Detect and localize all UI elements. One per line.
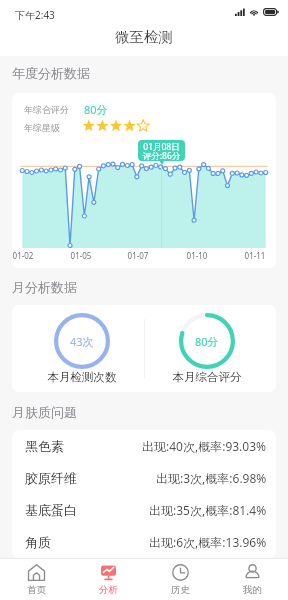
button[interactable]: 80分 (147, 313, 267, 385)
staticText: 评分:86分 (138, 150, 185, 161)
staticText: 80分 (195, 334, 219, 349)
button[interactable]: History (144, 559, 216, 596)
staticText: 01月08日 (138, 141, 185, 153)
staticText: 01-11 (239, 250, 271, 261)
staticText: 43次 (70, 334, 94, 349)
staticText: 本月检测次数 (22, 370, 142, 384)
staticText: 年度分析数据 (12, 65, 90, 81)
staticText: 01-10 (181, 250, 213, 261)
staticText: 首页 (27, 584, 46, 596)
staticText: 出现:3次,概率:6.98% (156, 470, 267, 486)
button[interactable]: 基底蛋白 (12, 494, 276, 526)
staticText: 出现:6次,概率:13.96% (149, 534, 267, 550)
staticText: 出现:35次,概率:81.4% (149, 502, 267, 518)
button[interactable]: Profile (216, 559, 288, 596)
button[interactable]: 角质 (12, 526, 276, 558)
staticText: 出现:40次,概率:93.03% (142, 438, 267, 454)
button[interactable]: 43次 (22, 313, 142, 385)
button[interactable]: 黑色素 (12, 430, 276, 462)
staticText: 01-02 (12, 250, 39, 261)
staticText: 分析 (99, 584, 118, 596)
staticText: 基底蛋白 (25, 502, 77, 518)
staticText: 80分 (84, 102, 108, 117)
staticText: 我的 (243, 584, 262, 596)
staticText: 黑色素 (25, 438, 64, 454)
staticText: 01-07 (122, 250, 154, 261)
staticText: 微至检测 (115, 28, 173, 46)
staticText: 月分析数据 (12, 279, 77, 295)
button[interactable]: 年综合评分 (12, 93, 276, 268)
staticText: 本月综合评分 (147, 370, 267, 384)
button[interactable]: Home (0, 559, 72, 596)
staticText: 历史 (171, 584, 190, 596)
staticText: 年综星级 (24, 122, 60, 133)
staticText: 年综合评分 (24, 104, 69, 115)
staticText: 角质 (25, 534, 51, 550)
staticText: 01-05 (65, 250, 97, 261)
button[interactable]: 胶原纤维 (12, 462, 276, 494)
staticText: 月肤质问题 (12, 404, 77, 420)
button[interactable]: Analysis (72, 559, 144, 596)
staticText: 下午2:43 (15, 8, 55, 22)
staticText: 胶原纤维 (25, 470, 77, 486)
